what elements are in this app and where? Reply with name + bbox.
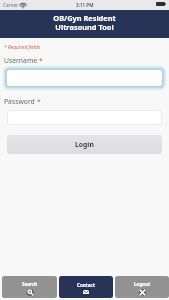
staticText: OB/Gyn Resident Ultrasound Tool: [53, 13, 116, 32]
staticText: Carrier: [3, 2, 18, 8]
button[interactable]: Logout: [115, 276, 169, 298]
button[interactable]: [6, 69, 163, 87]
staticText: 3:11 PM: [76, 2, 94, 8]
staticText: *: [39, 56, 43, 65]
button[interactable]: Contact: [59, 276, 113, 298]
button[interactable]: [7, 110, 162, 125]
staticText: Login: [75, 140, 94, 149]
staticText: Password: [4, 97, 37, 106]
staticText: Username: [4, 56, 39, 65]
staticText: Logout: [134, 281, 151, 287]
staticText: Contact: [77, 282, 95, 288]
staticText: *: [37, 97, 41, 106]
staticText: Search: [22, 281, 38, 287]
button[interactable]: Login: [7, 135, 162, 154]
staticText: * Required fields: [4, 44, 40, 51]
button[interactable]: Search: [2, 276, 57, 298]
